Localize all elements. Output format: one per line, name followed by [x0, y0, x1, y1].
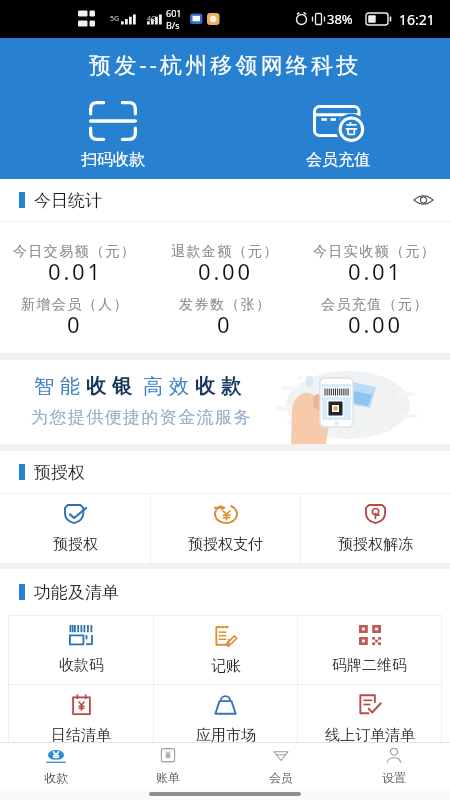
button[interactable]: 线上订单清单: [298, 685, 441, 753]
button[interactable]: 扫码收款: [0, 101, 225, 170]
staticText: 0: [67, 309, 83, 339]
button[interactable]: 预授权解冻: [301, 494, 450, 563]
staticText: 4G: [147, 14, 157, 24]
staticText: 会员充值: [306, 150, 370, 170]
staticText: 0.01: [348, 256, 403, 286]
staticText: 发券数（张）: [179, 296, 272, 314]
staticText: 收银: [83, 374, 135, 399]
staticText: 16:21: [399, 10, 435, 29]
staticText: 预授权: [53, 535, 98, 554]
staticText: 5G: [110, 14, 120, 24]
staticText: 0.00: [198, 256, 253, 286]
staticText: 收款: [44, 770, 68, 785]
button[interactable]: 收款码: [9, 616, 153, 684]
button[interactable]: 设置: [337, 743, 450, 788]
staticText: 记账: [211, 657, 241, 676]
staticText: 功能及清单: [34, 582, 119, 603]
button[interactable]: 应用市场: [154, 685, 297, 753]
staticText: 新增会员（人）: [21, 296, 129, 314]
staticText: 高效: [140, 374, 192, 399]
staticText: 38%: [327, 10, 353, 28]
staticText: 扫码收款: [81, 150, 145, 170]
staticText: 会员: [269, 770, 293, 785]
staticText: 退款金额（元）: [171, 243, 279, 261]
button[interactable]: 会员: [224, 743, 337, 788]
staticText: 收款: [192, 374, 244, 399]
staticText: 线上订单清单: [325, 726, 415, 745]
button[interactable]: 码牌二维码: [298, 616, 441, 684]
button[interactable]: 显示/隐藏金额: [408, 185, 438, 215]
staticText: 今日交易额（元）: [13, 243, 137, 261]
staticText: B/s: [166, 19, 180, 31]
button[interactable]: 收款: [0, 743, 112, 788]
staticText: 为您提供便捷的资金流服务: [31, 407, 252, 428]
staticText: 预授权: [34, 462, 85, 483]
staticText: 预授权支付: [188, 535, 263, 554]
button[interactable]: 会员充值: [225, 101, 450, 170]
button[interactable]: 记账: [154, 616, 297, 684]
staticText: 应用市场: [196, 726, 256, 745]
staticText: 预授权解冻: [338, 535, 413, 554]
staticText: 设置: [382, 770, 406, 785]
staticText: 0.00: [348, 309, 403, 339]
button[interactable]: 预授权支付: [151, 494, 300, 563]
staticText: 收款码: [59, 656, 104, 675]
button[interactable]: 日结清单: [9, 685, 153, 753]
staticText: 预发--杭州移领网络科技: [89, 49, 362, 79]
staticText: 智能: [31, 374, 83, 399]
button[interactable]: 预授权: [0, 494, 150, 563]
button[interactable]: 账单: [112, 743, 224, 788]
staticText: 日结清单: [51, 726, 111, 745]
staticText: 601: [166, 7, 182, 19]
staticText: 0: [217, 309, 233, 339]
staticText: 码牌二维码: [332, 656, 407, 675]
staticText: 今日统计: [34, 190, 102, 211]
staticText: 账单: [156, 770, 180, 785]
staticText: 今日实收额（元）: [313, 243, 437, 261]
staticText: 会员充值（元）: [321, 296, 429, 314]
staticText: 0.01: [48, 256, 103, 286]
